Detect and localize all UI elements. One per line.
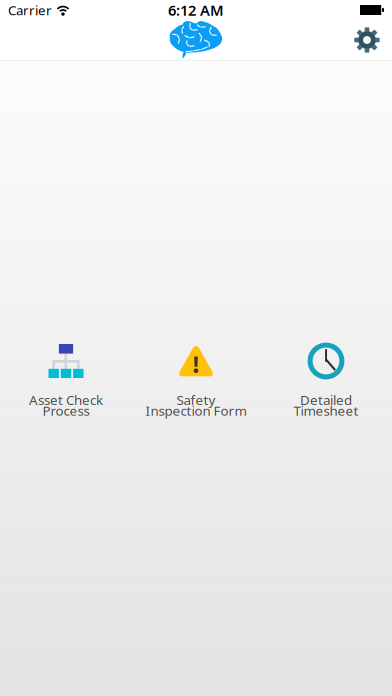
staticText: Detailed (300, 391, 352, 409)
button[interactable]: Detailed Timesheet (261, 342, 391, 437)
staticText: 6:12 AM (168, 0, 224, 20)
staticText: Inspection Form (145, 402, 246, 419)
staticText: Asset Check (29, 391, 103, 409)
button[interactable]: Safety Inspection Form (131, 342, 261, 437)
button[interactable]: Settings (345, 20, 389, 60)
staticText: Process (42, 402, 89, 419)
button[interactable]: Asset Check Process (1, 342, 131, 437)
staticText: Timesheet (293, 402, 358, 419)
staticText: Safety (176, 391, 215, 409)
staticText: Carrier (8, 1, 52, 19)
